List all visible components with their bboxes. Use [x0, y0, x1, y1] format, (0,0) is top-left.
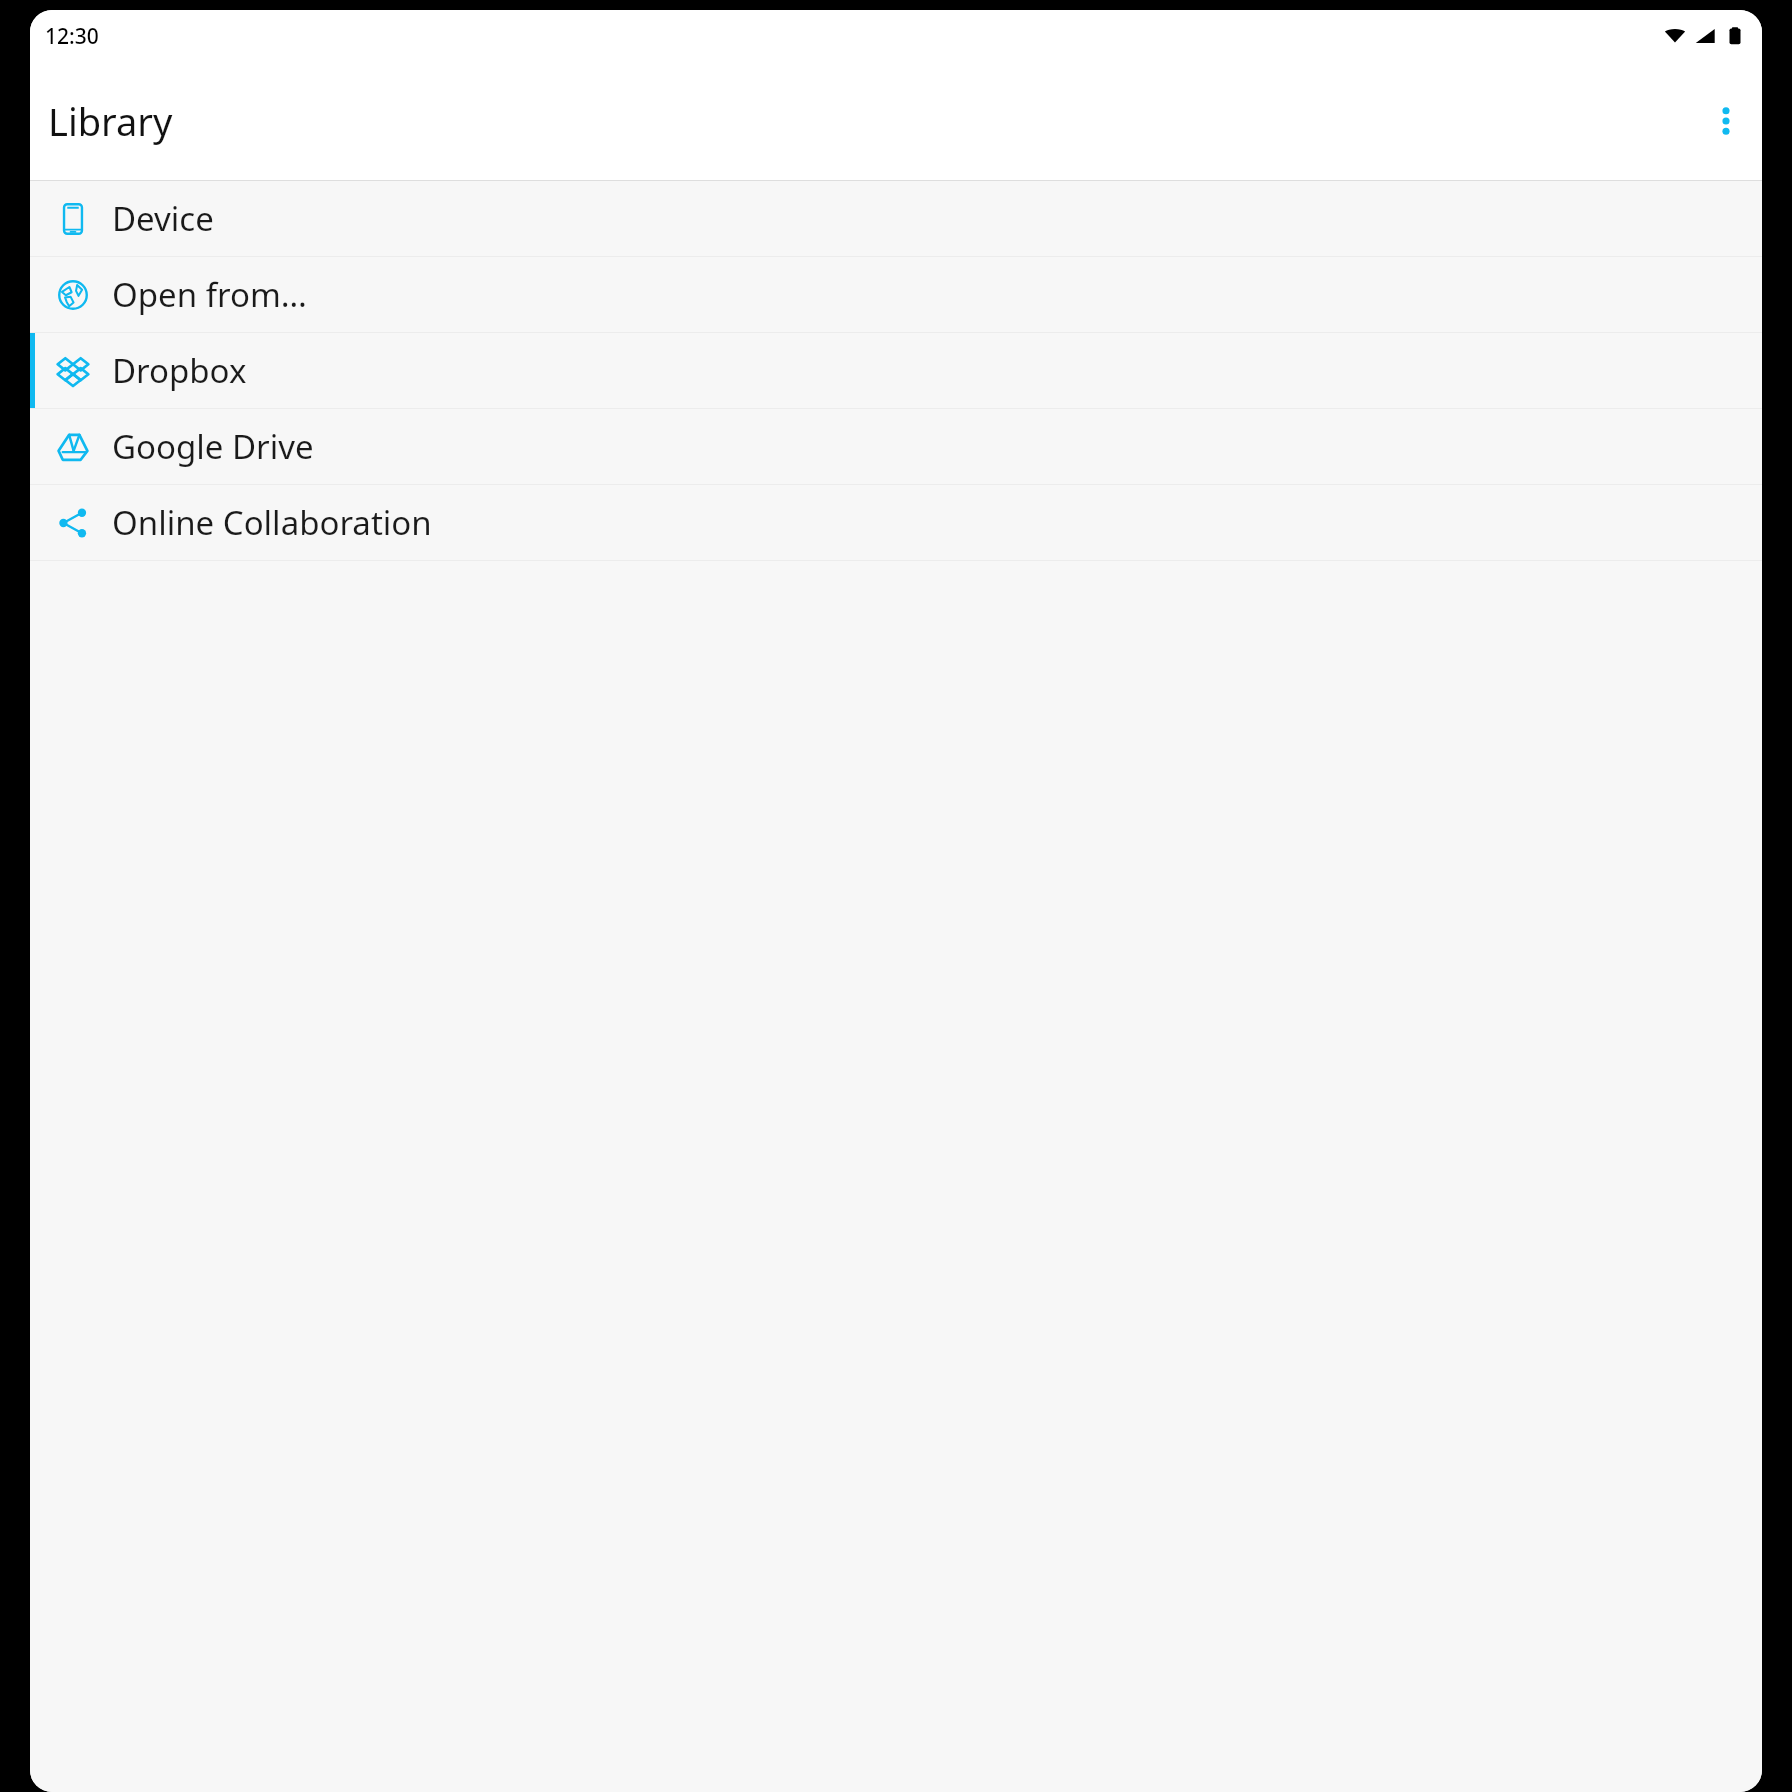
staticText: 12:30 [45, 22, 99, 51]
staticText: Open from… [112, 272, 307, 317]
button[interactable]: Google Drive [30, 409, 1762, 484]
staticText: Dropbox [112, 348, 247, 393]
staticText: Library [48, 95, 173, 147]
button[interactable]: Online Collaboration [30, 485, 1762, 560]
button[interactable]: Open from… [30, 257, 1762, 332]
button[interactable]: More options [1698, 93, 1754, 149]
staticText: Device [112, 196, 214, 241]
button[interactable]: Device [30, 181, 1762, 256]
button[interactable]: Dropbox [30, 333, 1762, 408]
staticText: Online Collaboration [112, 500, 432, 545]
staticText: Google Drive [112, 424, 314, 469]
